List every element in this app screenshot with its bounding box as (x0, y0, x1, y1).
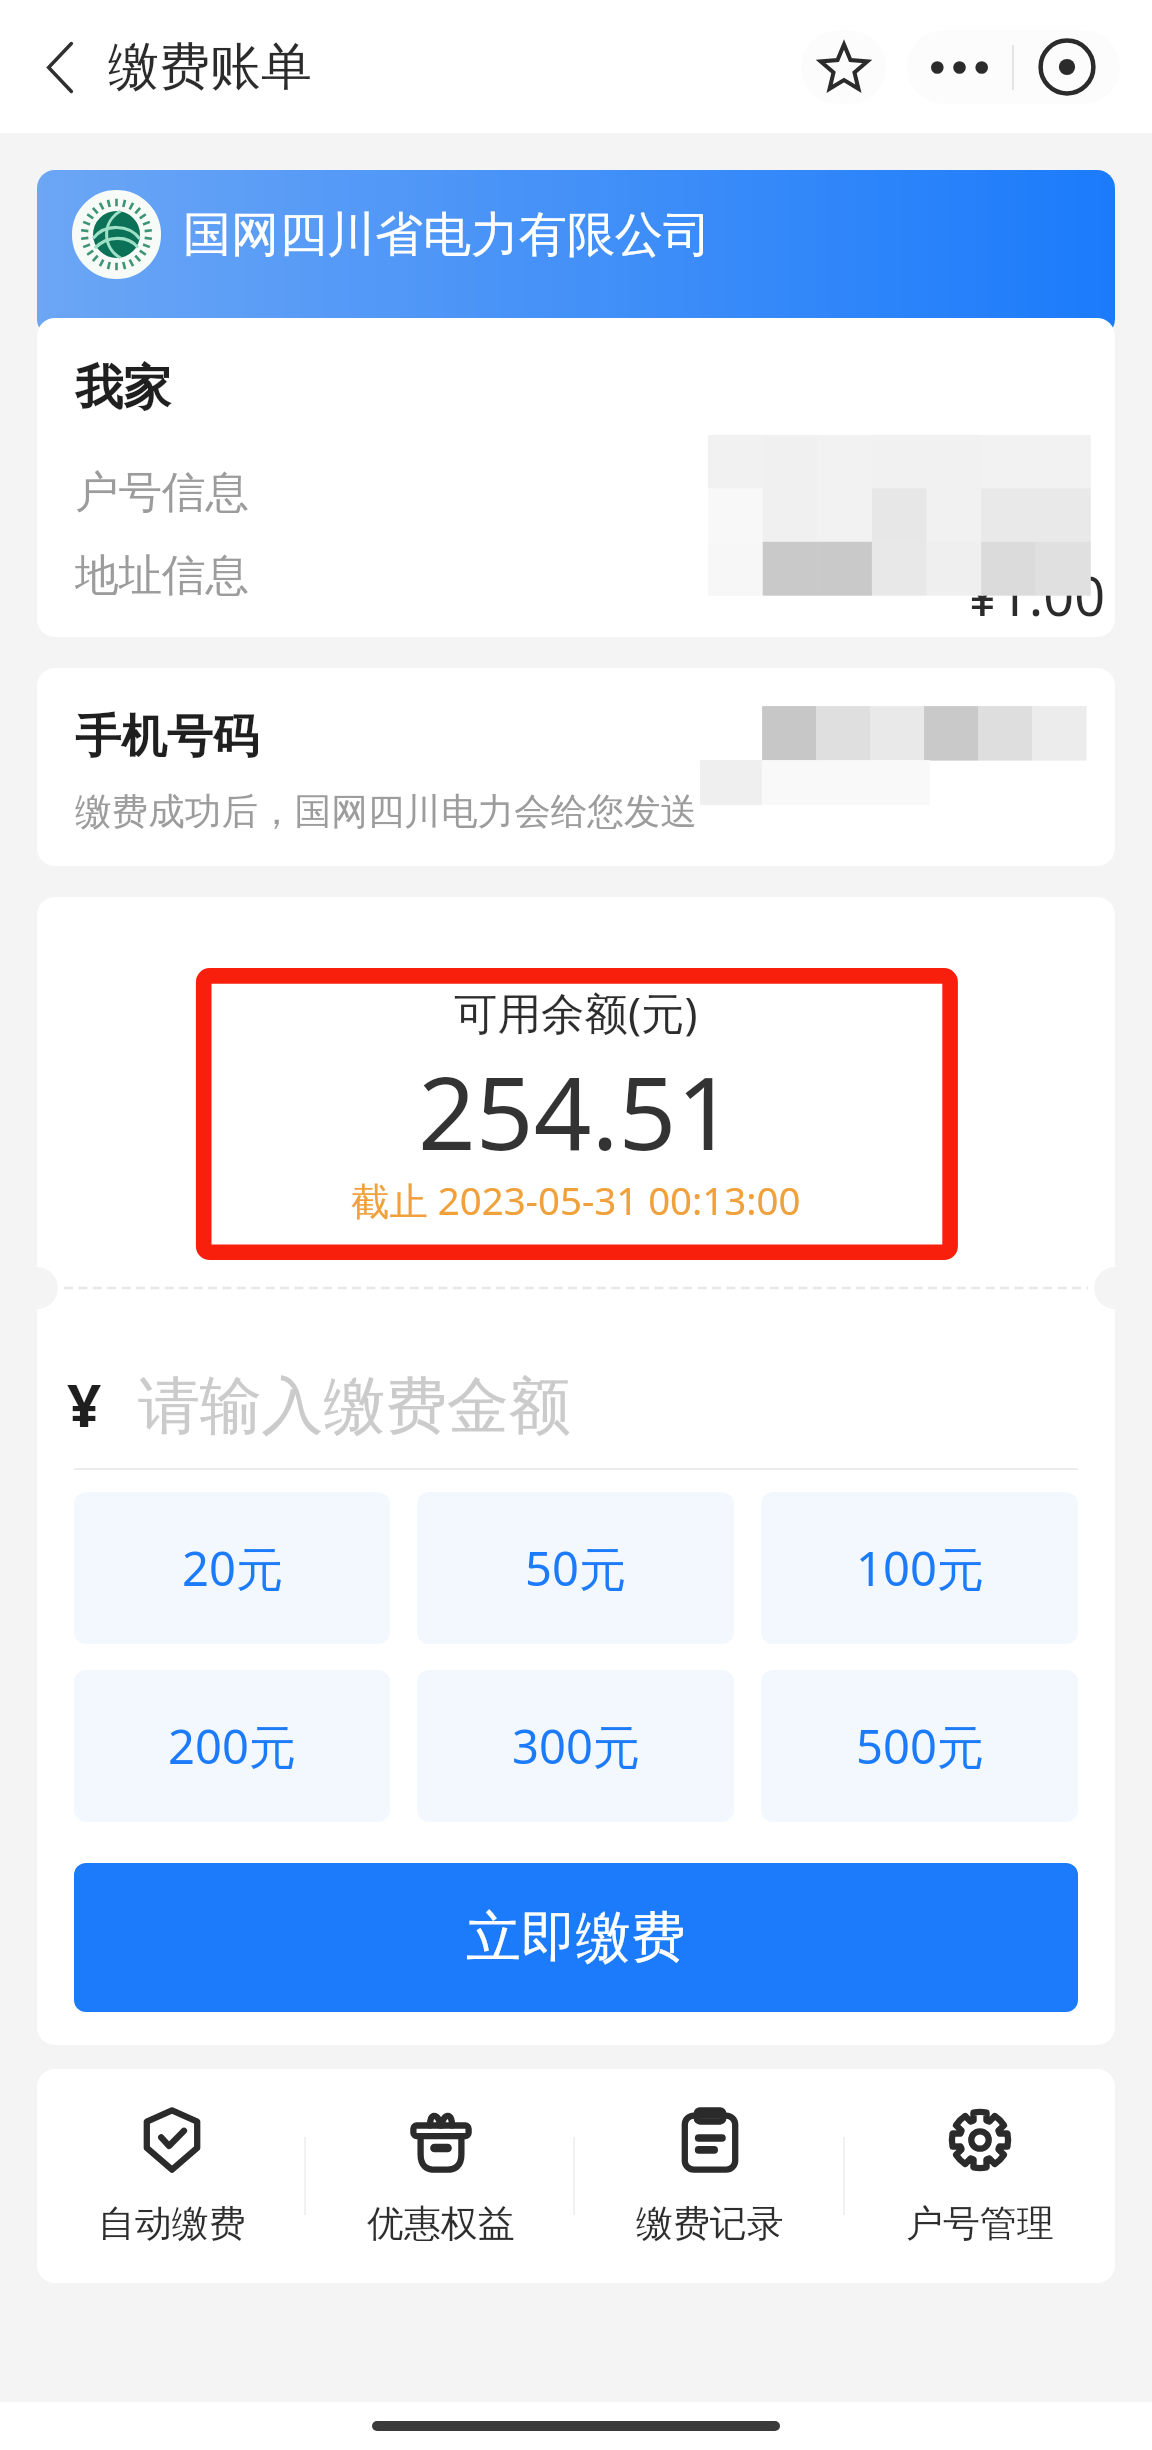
button[interactable]: 100元 (761, 1492, 1078, 1644)
staticText: 国网四川省电力有限公司 (183, 205, 711, 265)
button[interactable]: 手机号码 (37, 668, 1115, 866)
staticText: 500元 (856, 1714, 984, 1778)
button[interactable]: Close (1014, 30, 1120, 104)
staticText: 户号信息 (75, 465, 249, 520)
button[interactable]: 立即缴费 (74, 1863, 1078, 2012)
staticText: 254.51 (418, 1042, 735, 1180)
staticText: 200元 (168, 1714, 296, 1778)
button[interactable]: 500元 (761, 1670, 1078, 1822)
staticText: 100元 (856, 1536, 984, 1600)
staticText: 立即缴费 (466, 1903, 686, 1972)
staticText: 300元 (512, 1714, 640, 1778)
button[interactable]: 缴费记录 (575, 2069, 845, 2283)
staticText: 户号管理 (906, 2200, 1054, 2246)
staticText: 50元 (525, 1536, 626, 1600)
button[interactable]: Favorite (801, 30, 886, 104)
staticText: 20元 (182, 1536, 283, 1600)
button[interactable]: 户号管理 (845, 2069, 1115, 2283)
button[interactable]: 200元 (74, 1670, 390, 1822)
staticText: 请输入缴费金额 (138, 1367, 571, 1445)
button[interactable]: More options (907, 30, 1012, 104)
button[interactable]: 自动缴费 (37, 2069, 306, 2283)
staticText: 可用余额(元) (454, 982, 698, 1041)
button[interactable]: 20元 (74, 1492, 390, 1644)
staticText: 自动缴费 (98, 2200, 246, 2246)
button[interactable]: 我家 (37, 318, 1115, 637)
staticText: 手机号码 (75, 708, 259, 766)
staticText: 地址信息 (75, 548, 249, 603)
staticText: ¥1.00 (967, 558, 1106, 632)
staticText: 优惠权益 (367, 2200, 515, 2246)
staticText: 截止 2023-05-31 00:13:00 (351, 1174, 801, 1226)
staticText: ¥ (67, 1363, 102, 1441)
button[interactable]: 优惠权益 (306, 2069, 575, 2283)
button[interactable]: Back (15, 22, 105, 112)
staticText: 我家 (75, 358, 171, 418)
staticText: 缴费成功后，国网四川电力会给您发送 (75, 789, 698, 835)
staticText: 缴费记录 (636, 2200, 784, 2246)
button[interactable]: 50元 (417, 1492, 734, 1644)
staticText: 缴费账单 (108, 35, 312, 99)
button[interactable]: 300元 (417, 1670, 734, 1822)
